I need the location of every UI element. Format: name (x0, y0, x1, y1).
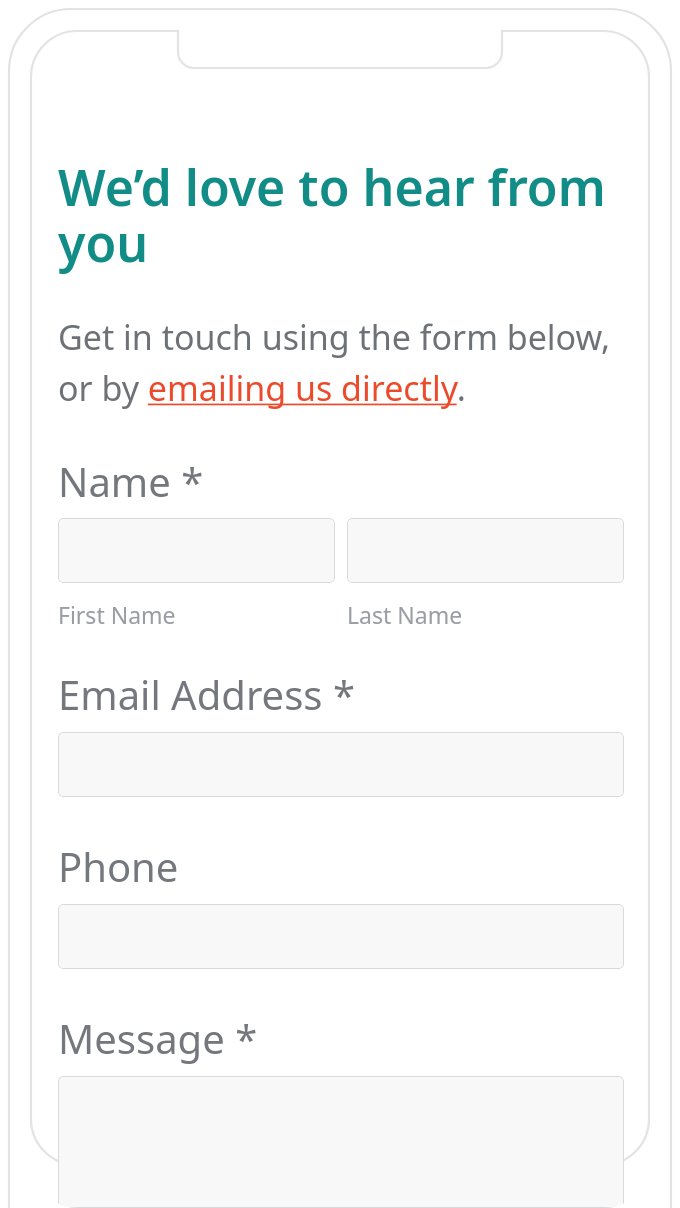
button[interactable]: Get in touch using the form below, or by… (58, 314, 624, 411)
button[interactable]: Text input field (347, 518, 624, 583)
staticText: Last Name (347, 599, 463, 630)
staticText: Name * (58, 454, 204, 508)
button[interactable]: Text input field (58, 732, 624, 797)
button[interactable]: Text input field (58, 518, 335, 583)
button[interactable]: Text input field (58, 904, 624, 969)
staticText: Email Address * (58, 667, 355, 721)
button[interactable]: Text input field (58, 1076, 624, 1208)
staticText: Phone (58, 839, 179, 893)
staticText: We’d love to hear from you (58, 153, 610, 277)
staticText: First Name (58, 599, 176, 630)
staticText: Message * (58, 1011, 258, 1065)
